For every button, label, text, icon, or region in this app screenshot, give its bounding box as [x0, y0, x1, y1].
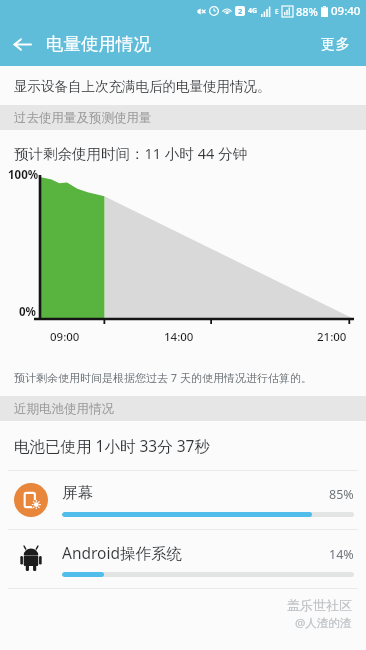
staticText: 更多 [321, 35, 350, 53]
staticText: 近期电池使用情况 [14, 401, 114, 417]
staticText: 100% [8, 167, 39, 183]
staticText: 21:00 [317, 329, 347, 345]
button[interactable]: Back [0, 22, 44, 66]
staticText: 预计剩余使用时间：11 小时 44 分钟 [14, 143, 247, 163]
staticText: 14:00 [164, 329, 194, 345]
button[interactable]: 屏幕 [0, 471, 366, 529]
staticText: 0% [19, 304, 36, 320]
staticText: E [275, 7, 279, 16]
staticText: 电池已使用 1小时 33分 37秒 [14, 435, 210, 456]
staticText: 09:40 [331, 3, 361, 19]
staticText: 85% [329, 486, 354, 503]
button[interactable]: Android操作系统 [0, 530, 366, 588]
staticText: 14% [329, 546, 354, 563]
staticText: 4G [248, 6, 258, 16]
staticText: 显示设备自上次充满电后的电量使用情况。 [14, 78, 271, 95]
staticText: 88% [296, 4, 318, 19]
staticText: 2 [238, 6, 243, 16]
staticText: 电量使用情况 [46, 33, 151, 55]
staticText: @人渣的渣 [295, 615, 352, 631]
staticText: 预计剩余使用时间是根据您过去 7 天的使用情况进行估算的。 [14, 370, 313, 385]
staticText: 09:00 [50, 329, 80, 345]
staticText: 过去使用量及预测使用量 [14, 110, 152, 126]
staticText: Android操作系统 [62, 542, 329, 563]
button[interactable]: 更多 [305, 25, 366, 63]
staticText: 盖乐世社区 [287, 597, 352, 613]
staticText: 屏幕 [62, 483, 329, 503]
